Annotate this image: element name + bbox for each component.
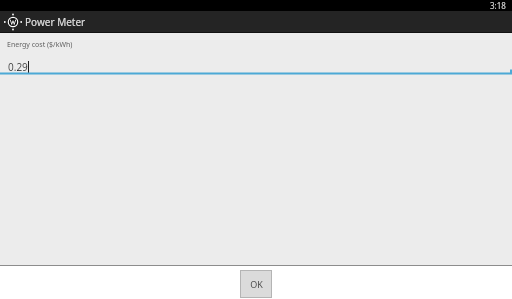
staticText: 0.29 <box>8 60 28 74</box>
staticText: Energy cost ($/kWh) <box>7 40 73 50</box>
staticText: Power Meter <box>25 15 86 29</box>
button[interactable]: OK <box>241 271 271 297</box>
staticText: OK <box>250 278 263 290</box>
staticText: 3:18 <box>490 0 506 11</box>
button[interactable]: 0.29 <box>0 58 512 76</box>
other: Power Meter app icon <box>5 14 21 30</box>
